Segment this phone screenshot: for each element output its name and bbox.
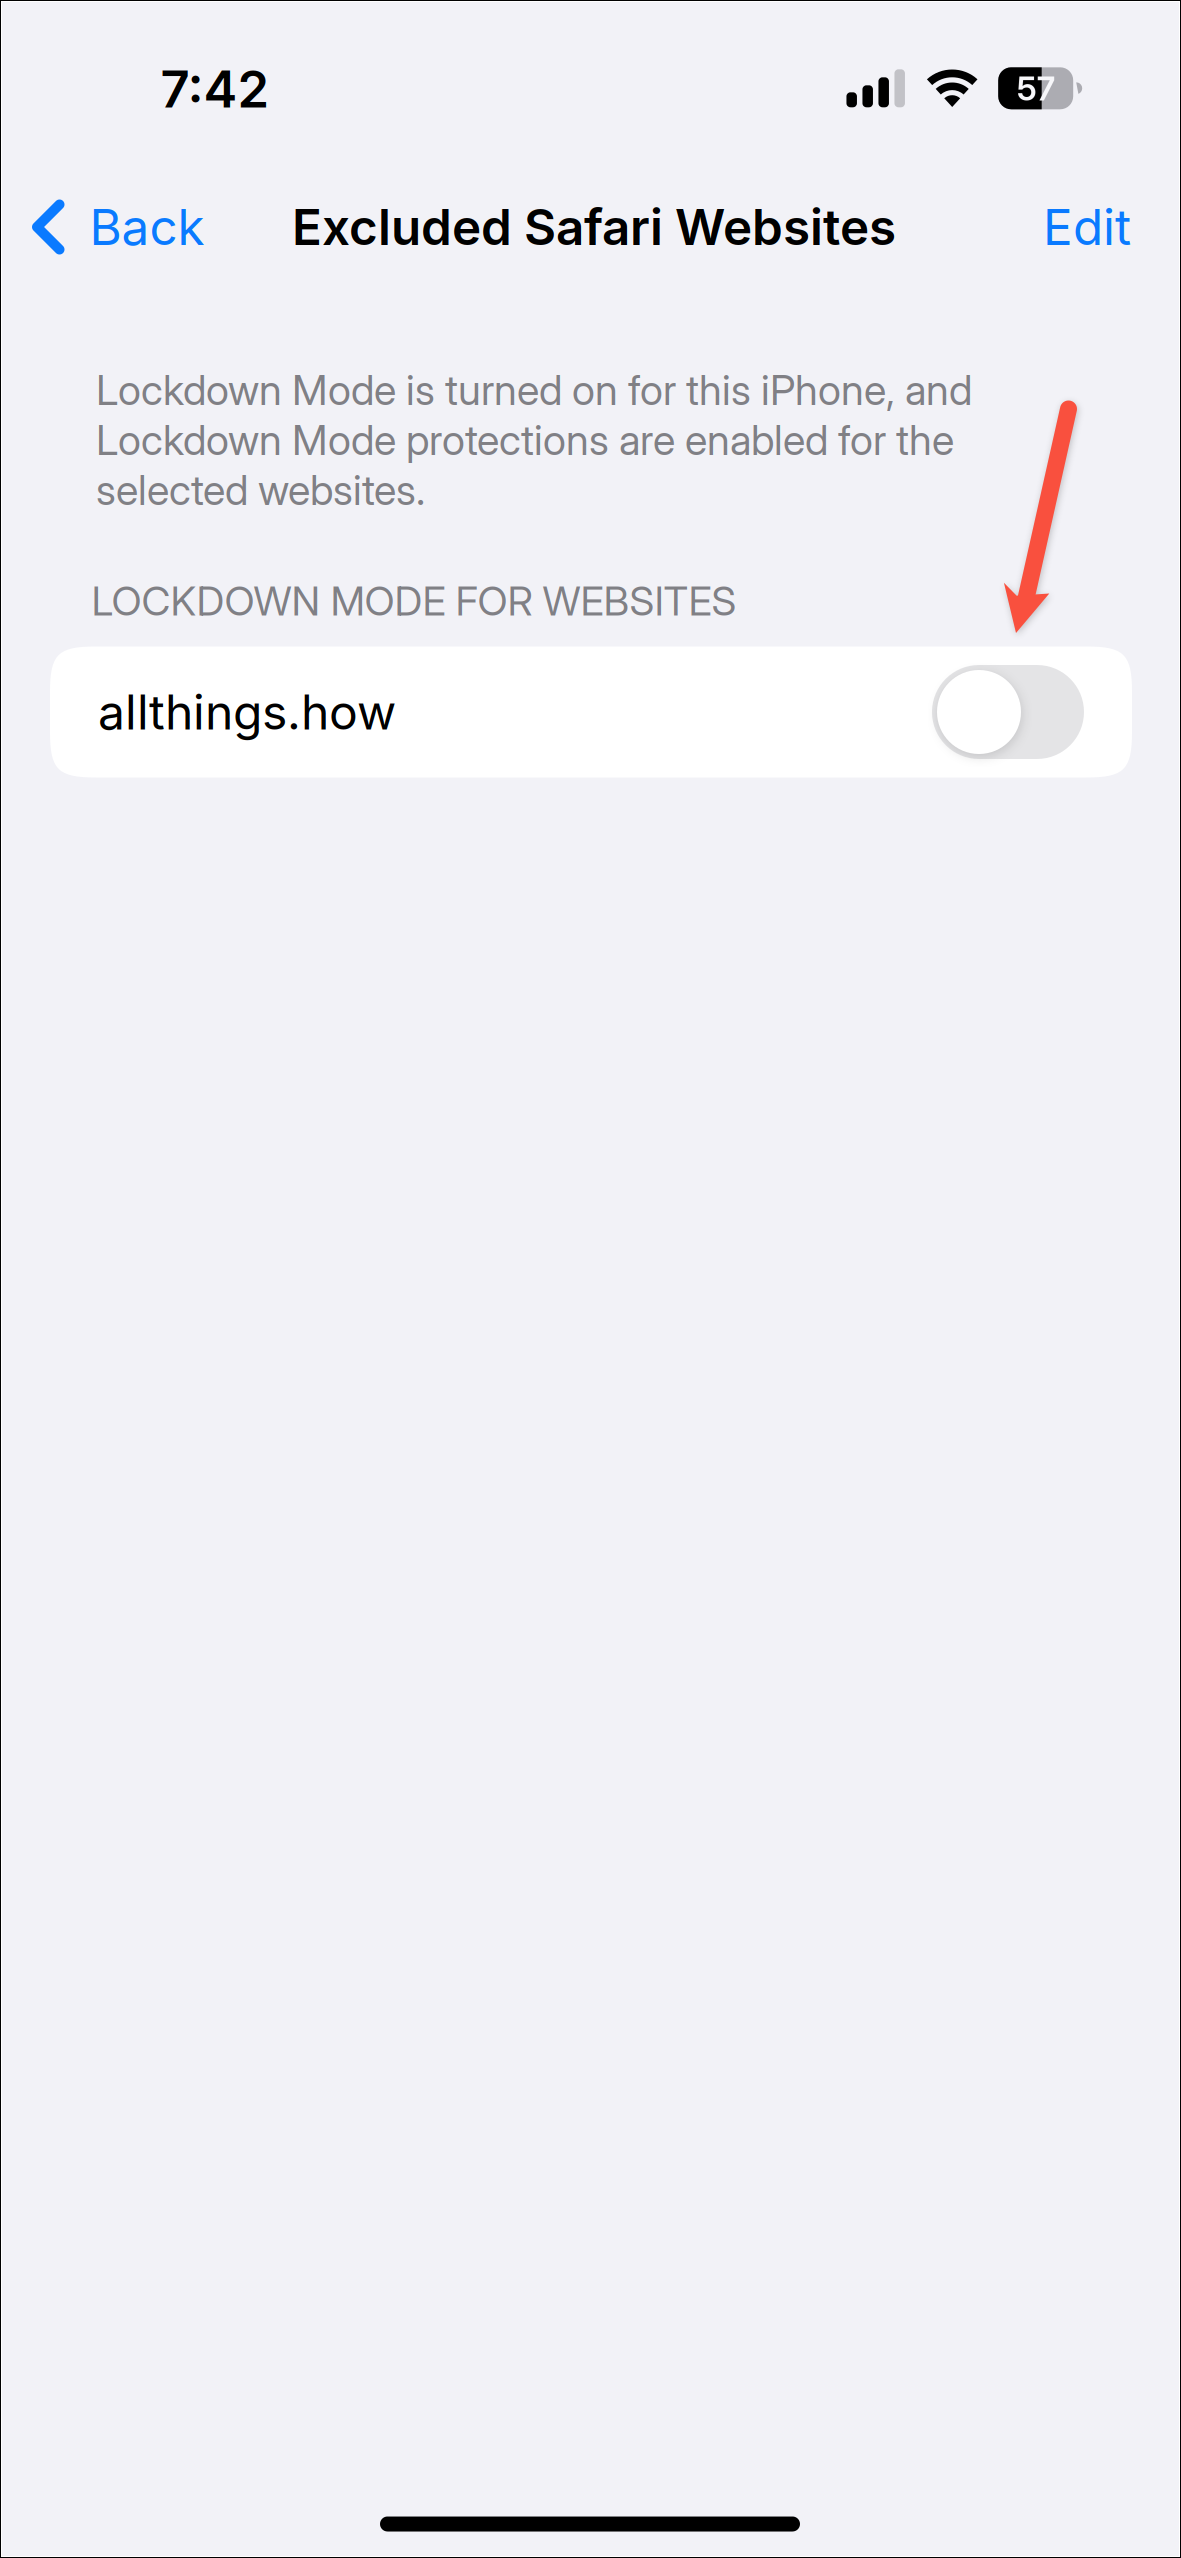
staticText: 57 bbox=[1017, 68, 1055, 108]
staticText: Lockdown Mode is turned on for this iPho… bbox=[96, 365, 972, 515]
button[interactable]: allthings.how bbox=[50, 646, 1132, 777]
staticText: 7:42 bbox=[160, 58, 269, 120]
button[interactable]: Back bbox=[0, 167, 230, 287]
staticText: Edit bbox=[1043, 197, 1131, 257]
button[interactable]: Edit bbox=[1013, 167, 1179, 287]
staticText: LOCKDOWN MODE FOR WEBSITES bbox=[91, 577, 736, 625]
staticText: allthings.how bbox=[98, 683, 396, 741]
staticText: Excluded Safari Websites bbox=[292, 197, 896, 257]
staticText: Back bbox=[89, 197, 204, 257]
